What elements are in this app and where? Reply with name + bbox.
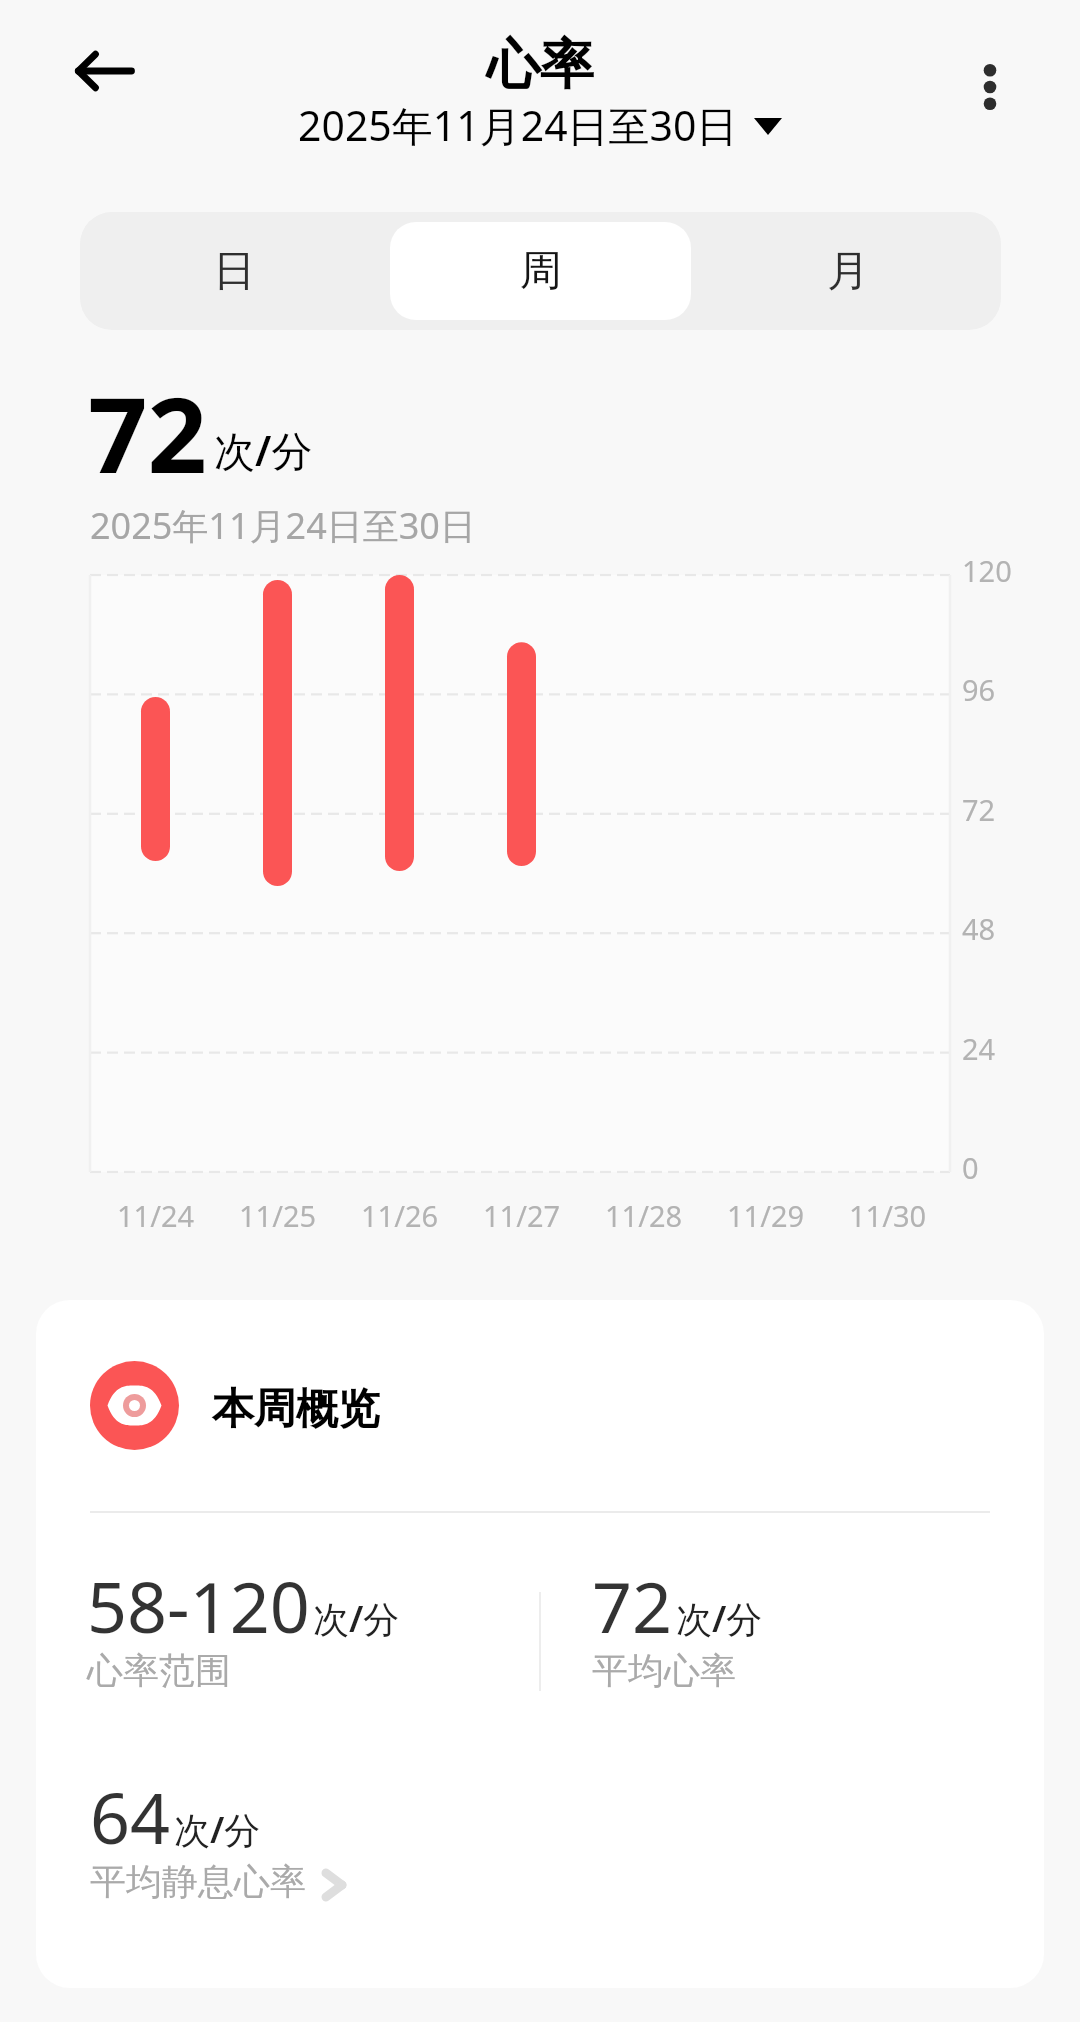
- staticText: 平均心率: [592, 1648, 736, 1693]
- staticText: 本周概览: [212, 1383, 380, 1436]
- staticText: 11/30: [849, 1196, 927, 1235]
- staticText: 11/25: [239, 1196, 317, 1235]
- staticText: 58-120: [87, 1558, 310, 1653]
- staticText: 0: [962, 1148, 979, 1187]
- staticText: 11/29: [727, 1196, 805, 1235]
- staticText: 2025年11月24日至30日: [90, 501, 476, 550]
- button[interactable]: 周: [390, 222, 691, 320]
- staticText: 64: [90, 1769, 171, 1864]
- button[interactable]: 2025年11月24日至30日: [298, 97, 782, 153]
- staticText: 日: [213, 245, 255, 298]
- staticText: 72: [88, 362, 207, 504]
- button[interactable]: 月: [697, 222, 998, 320]
- staticText: 周: [520, 245, 562, 298]
- staticText: 心率: [486, 31, 594, 99]
- staticText: 120: [962, 551, 1012, 590]
- staticText: 24: [962, 1029, 996, 1068]
- staticText: 96: [962, 670, 996, 709]
- staticText: 11/27: [483, 1196, 561, 1235]
- staticText: 次/分: [676, 1594, 763, 1643]
- staticText: 72: [592, 1558, 673, 1653]
- staticText: 11/24: [117, 1196, 195, 1235]
- button[interactable]: Back: [59, 26, 149, 116]
- staticText: 次/分: [313, 1594, 400, 1643]
- staticText: 次/分: [214, 422, 313, 478]
- staticText: 11/28: [605, 1196, 683, 1235]
- staticText: 平均静息心率: [90, 1859, 306, 1904]
- staticText: 48: [962, 909, 996, 948]
- staticText: 次/分: [174, 1805, 261, 1854]
- button[interactable]: 64: [36, 1745, 1044, 1920]
- button[interactable]: More options: [945, 42, 1035, 132]
- staticText: 2025年11月24日至30日: [298, 97, 738, 153]
- staticText: 11/26: [361, 1196, 439, 1235]
- staticText: 心率范围: [87, 1648, 231, 1693]
- staticText: 月: [827, 245, 869, 298]
- button[interactable]: 日: [83, 222, 384, 320]
- staticText: 72: [962, 790, 996, 829]
